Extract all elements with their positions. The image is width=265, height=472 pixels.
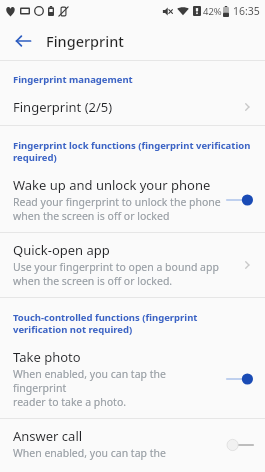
staticText: Fingerprint management — [13, 73, 251, 86]
button[interactable]: On — [227, 191, 253, 209]
button[interactable]: On — [227, 370, 253, 388]
button[interactable]: Back — [8, 26, 38, 56]
other: Open — [239, 257, 255, 273]
staticText: When enabled, you can tap the fingerprin… — [13, 446, 221, 463]
button[interactable]: Take photo — [0, 340, 265, 418]
staticText: Fingerprint — [46, 31, 124, 51]
button[interactable]: Answer call — [0, 419, 265, 472]
staticText: Quick-open app — [13, 241, 110, 259]
other: Open — [239, 99, 255, 115]
staticText: Take photo — [13, 348, 81, 366]
button[interactable]: Off — [227, 436, 253, 454]
button[interactable]: Wake up and unlock your phone — [0, 168, 265, 232]
button[interactable]: Quick-open app — [0, 233, 265, 297]
staticText: Touch-controlled functions (fingerprint … — [13, 311, 251, 336]
button[interactable]: Fingerprint (2/5) — [0, 90, 265, 125]
staticText: Wake up and unlock your phone — [13, 176, 211, 194]
staticText: 16:35 — [233, 4, 260, 18]
staticText: Answer call — [13, 427, 83, 445]
staticText: Read your fingerprint to unlock the phon… — [13, 195, 221, 223]
staticText: 42% — [203, 5, 222, 18]
staticText: When enabled, you can tap the fingerprin… — [13, 367, 221, 409]
staticText: Use your fingerprint to open a bound app… — [13, 260, 219, 288]
staticText: Fingerprint (2/5) — [13, 98, 113, 116]
staticText: Fingerprint lock functions (fingerprint … — [13, 139, 251, 164]
